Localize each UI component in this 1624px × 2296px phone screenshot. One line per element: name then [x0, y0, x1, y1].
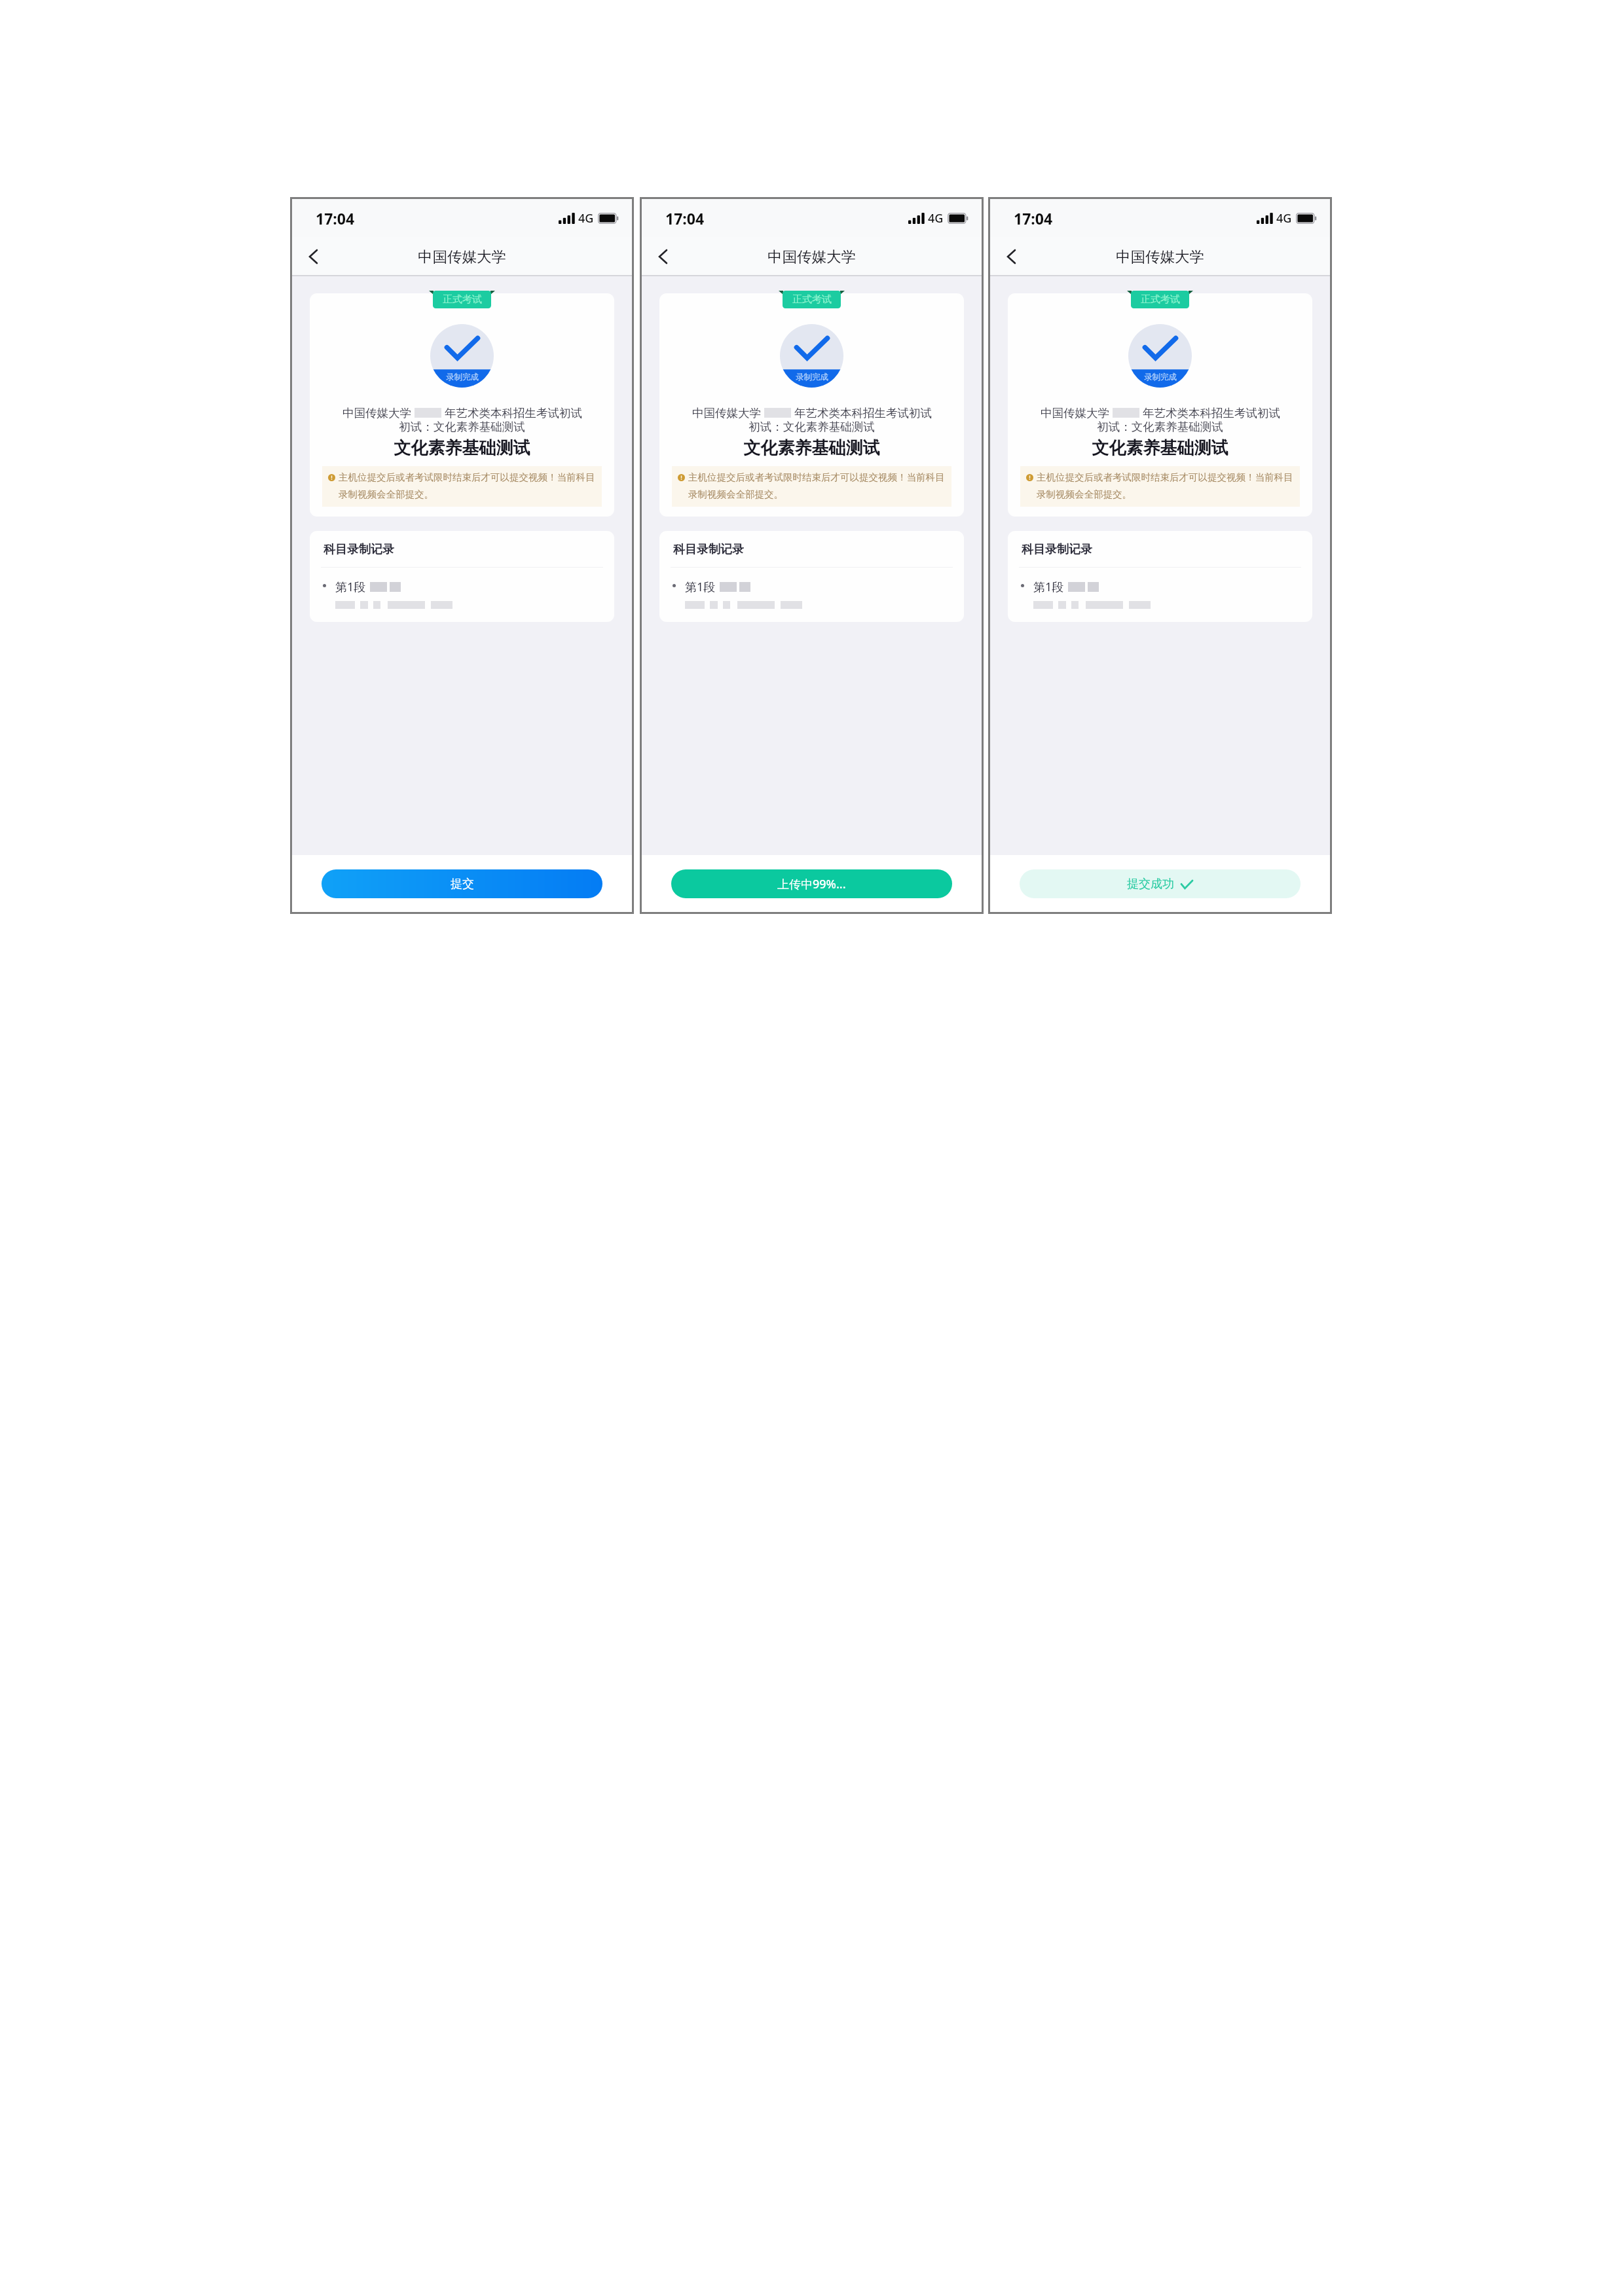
staticText: 初试：文化素养基础测试: [310, 420, 614, 433]
button[interactable]: 第1段: [1008, 568, 1312, 622]
button[interactable]: 上传中99%...: [671, 869, 952, 898]
staticText: 文化素养基础测试: [310, 437, 614, 458]
button[interactable]: Back: [996, 242, 1026, 272]
staticText: 中国传媒大学: [342, 406, 411, 420]
staticText: 主机位提交后或者考试限时结束后才可以提交视频！当前科目录制视频会全部提交。: [688, 471, 951, 501]
button[interactable]: 提交: [322, 869, 602, 898]
staticText: 第1段: [685, 579, 716, 595]
staticText: 正式考试: [792, 293, 832, 306]
staticText: 17:04: [665, 208, 705, 228]
staticText: 中国传媒大学: [1041, 406, 1109, 420]
staticText: 科目录制记录: [1022, 542, 1092, 557]
staticText: 4G: [578, 210, 594, 227]
staticText: 上传中99%...: [777, 876, 846, 892]
staticText: 正式考试: [443, 293, 482, 306]
button[interactable]: 提交成功: [1020, 869, 1301, 898]
staticText: 科目录制记录: [673, 542, 744, 557]
button[interactable]: Back: [298, 242, 328, 272]
staticText: 科目录制记录: [323, 542, 394, 557]
staticText: 中国传媒大学: [418, 247, 506, 266]
staticText: 提交: [451, 877, 474, 892]
staticText: 17:04: [316, 208, 355, 228]
staticText: 录制完成: [446, 372, 479, 382]
staticText: 4G: [1276, 210, 1292, 227]
staticText: 17:04: [1014, 208, 1053, 228]
staticText: 年艺术类本科招生考试初试: [1143, 406, 1280, 420]
staticText: 第1段: [1033, 579, 1064, 595]
staticText: 初试：文化素养基础测试: [1008, 420, 1312, 433]
staticText: 中国传媒大学: [1116, 247, 1204, 266]
staticText: 主机位提交后或者考试限时结束后才可以提交视频！当前科目录制视频会全部提交。: [1037, 471, 1300, 501]
button[interactable]: 第1段: [310, 568, 614, 622]
staticText: 年艺术类本科招生考试初试: [445, 406, 582, 420]
staticText: 第1段: [335, 579, 366, 595]
button[interactable]: Back: [648, 242, 678, 272]
staticText: 中国传媒大学: [767, 247, 856, 266]
button[interactable]: 第1段: [659, 568, 964, 622]
staticText: 录制完成: [1144, 372, 1177, 382]
staticText: 4G: [928, 210, 944, 227]
staticText: 文化素养基础测试: [1008, 437, 1312, 458]
staticText: 正式考试: [1141, 293, 1180, 306]
staticText: 文化素养基础测试: [659, 437, 964, 458]
staticText: 中国传媒大学: [692, 406, 761, 420]
staticText: 初试：文化素养基础测试: [659, 420, 964, 433]
staticText: 提交成功: [1127, 877, 1174, 892]
staticText: 主机位提交后或者考试限时结束后才可以提交视频！当前科目录制视频会全部提交。: [339, 471, 602, 501]
staticText: 录制完成: [796, 372, 828, 382]
staticText: 年艺术类本科招生考试初试: [794, 406, 932, 420]
